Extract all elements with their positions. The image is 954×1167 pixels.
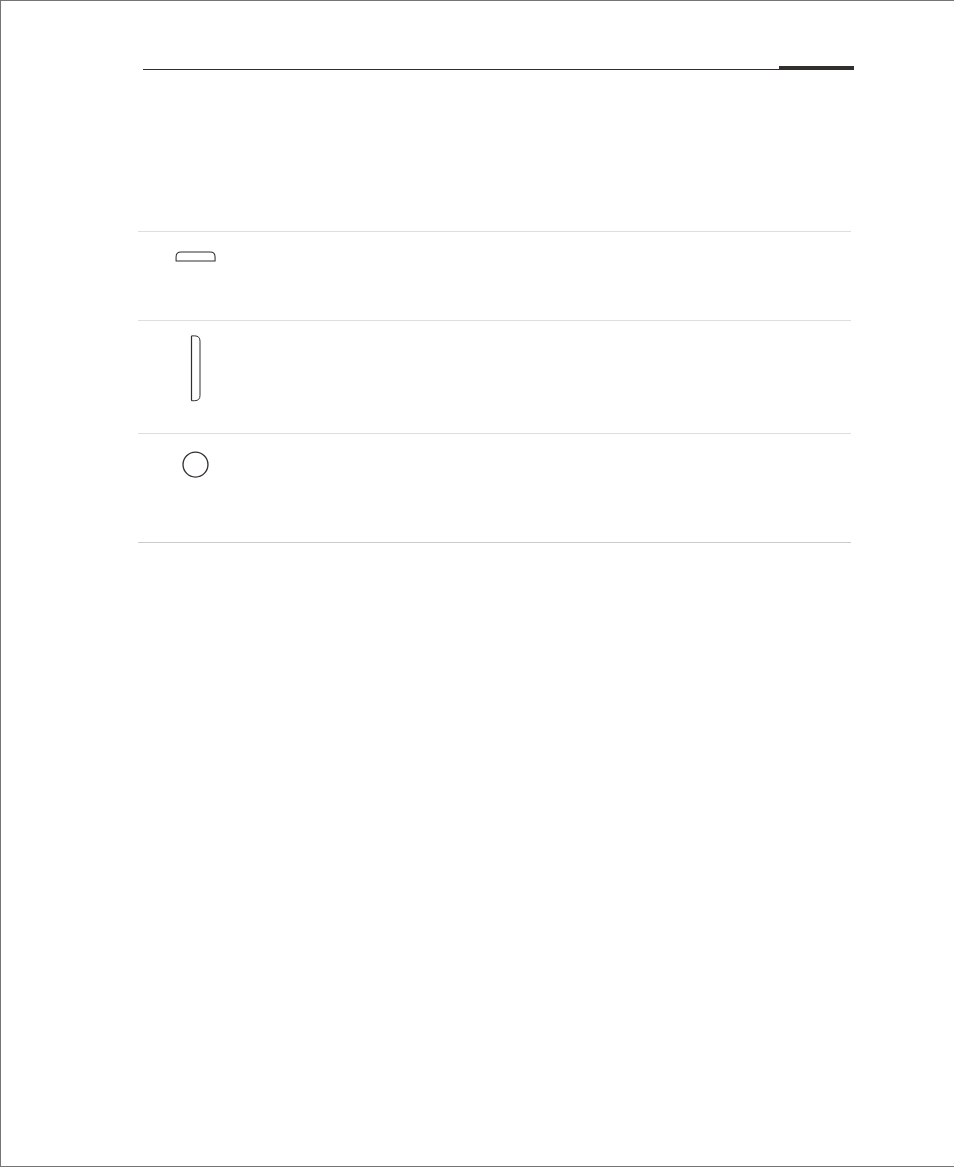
button[interactable]: Round device <box>138 433 851 542</box>
button[interactable]: Landscape device <box>138 231 851 320</box>
button[interactable]: Portrait device <box>138 320 851 433</box>
button[interactable]: Wear tab, selected <box>779 39 854 69</box>
